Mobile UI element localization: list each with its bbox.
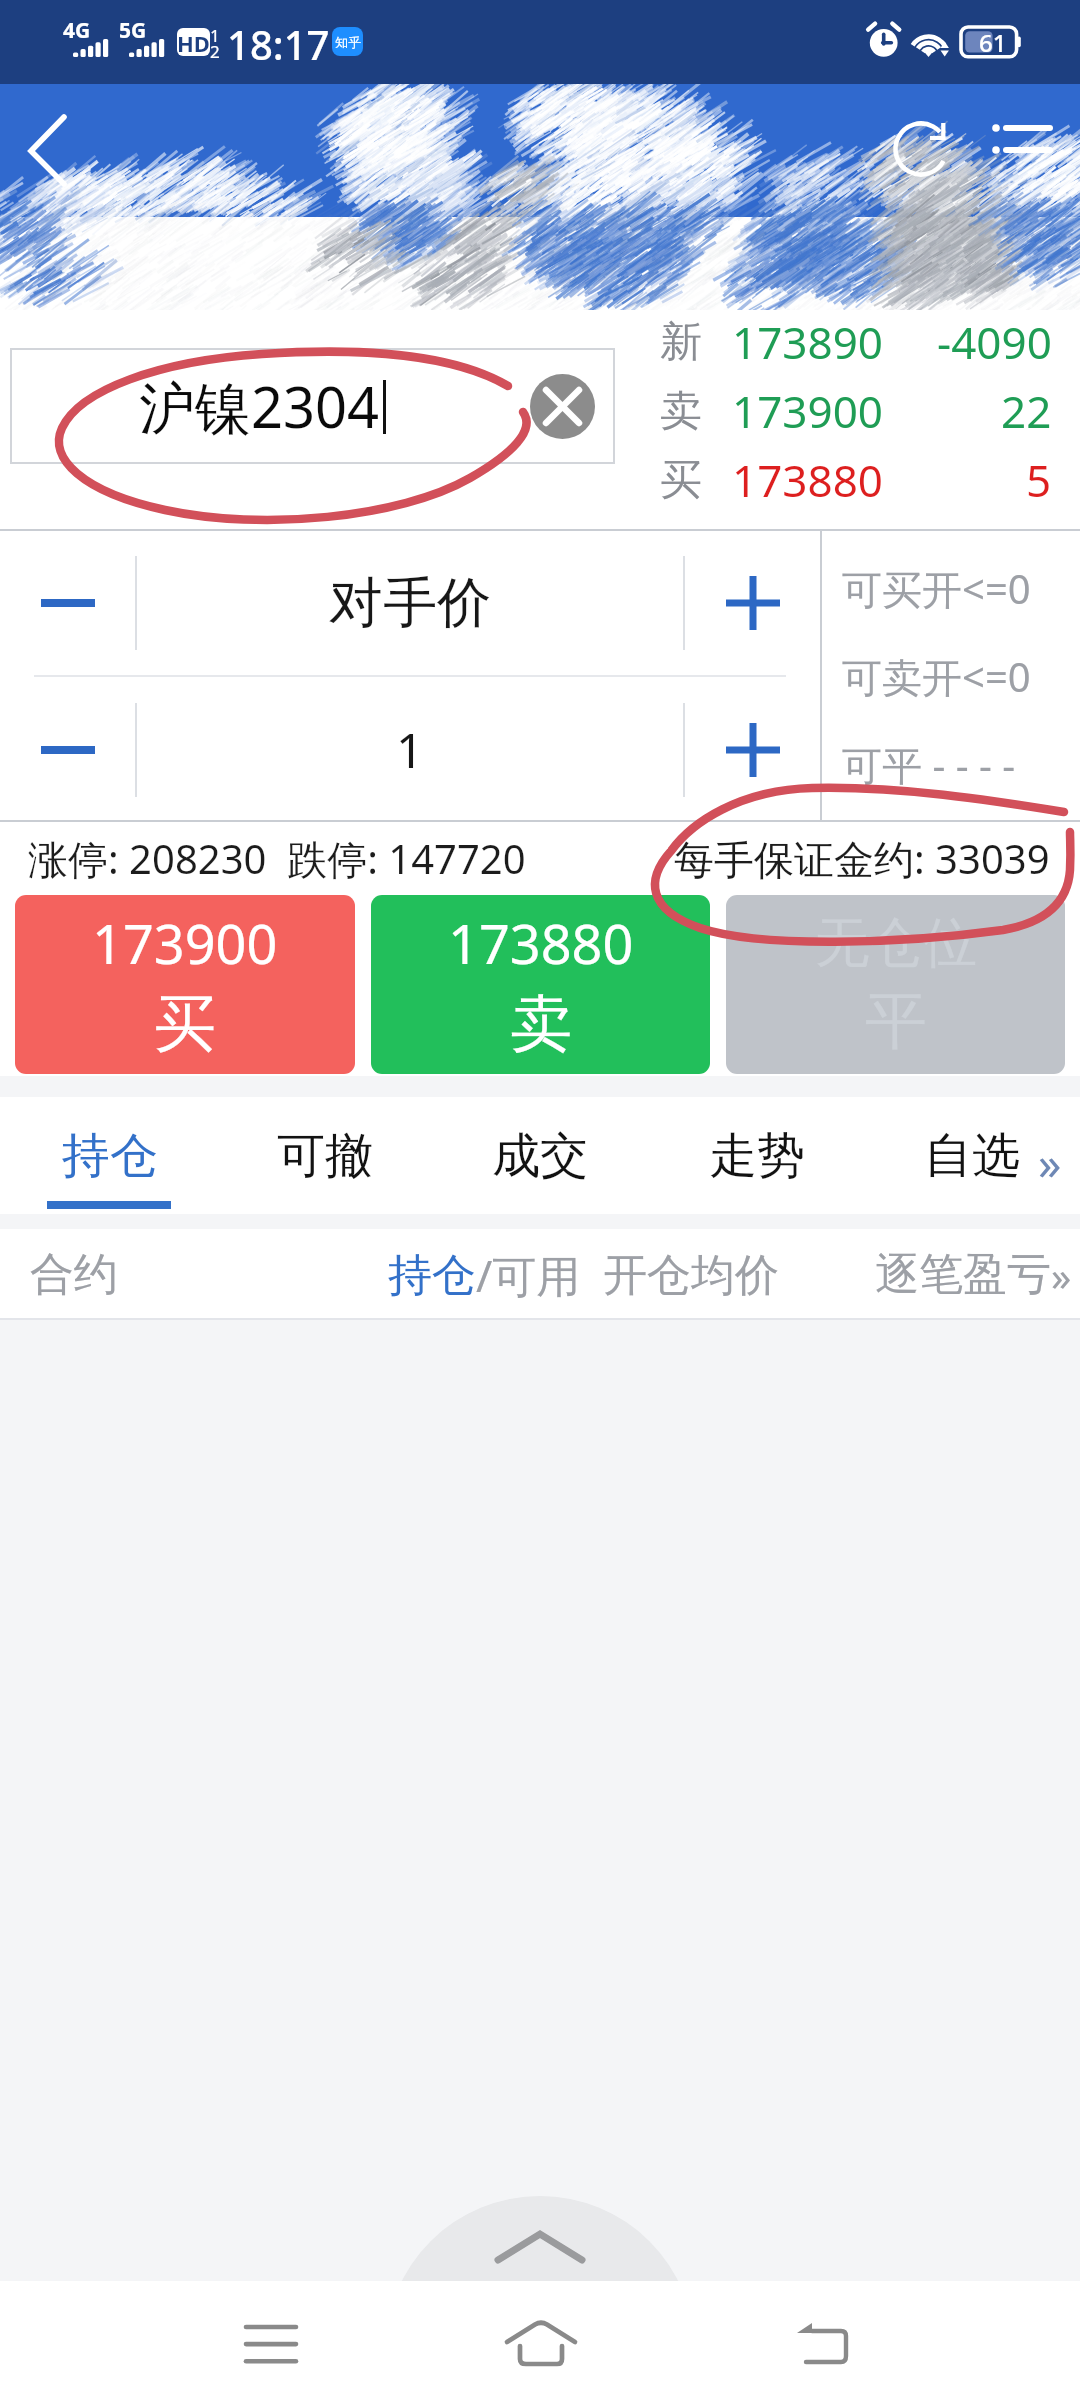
button[interactable]: 173900 (15, 895, 355, 1074)
staticText: 22 (1001, 381, 1052, 441)
button[interactable]: 走势 (657, 1097, 857, 1214)
staticText: 知乎 (335, 34, 361, 50)
staticText: 买 (154, 985, 216, 1063)
staticText: HD (177, 28, 210, 56)
button[interactable]: Decrease (0, 677, 135, 822)
staticText: 卖 (510, 985, 572, 1063)
button[interactable]: Recent apps (211, 2299, 331, 2389)
staticText: 173880 (732, 450, 884, 510)
staticText: 卖 (660, 385, 702, 438)
staticText: 173890 (732, 312, 884, 372)
staticText: 61 (979, 26, 1007, 59)
staticText: 2 (210, 40, 220, 63)
staticText: 5G (119, 16, 147, 45)
staticText: /可用 (476, 1245, 581, 1305)
button[interactable]: Decrease (0, 531, 135, 675)
staticText: 平 (865, 982, 927, 1060)
staticText: 开仓均价 (603, 1248, 779, 1303)
button[interactable]: Increase (685, 677, 820, 822)
staticText: » (1038, 1131, 1062, 1194)
staticText: 每手保证金约: 33039 (674, 831, 1050, 886)
button[interactable]: 成交 (440, 1097, 640, 1214)
staticText: 可买开<=0 (842, 561, 1031, 616)
staticText: 涨停: 208230 跌停: 147720 (28, 831, 526, 886)
staticText: 可撤 (277, 1126, 373, 1186)
staticText: 自选 (924, 1126, 1020, 1186)
button[interactable]: 173880 (371, 895, 710, 1074)
staticText: 4G (63, 16, 91, 45)
staticText: 走势 (709, 1126, 805, 1186)
button[interactable]: Clear (530, 374, 595, 439)
staticText: 合约 (30, 1247, 118, 1302)
staticText: 成交 (492, 1126, 588, 1186)
button[interactable]: 持仓 (10, 1097, 210, 1214)
staticText: 持仓 (388, 1248, 476, 1303)
staticText: 1 (396, 717, 424, 782)
staticText: -4090 (937, 312, 1052, 372)
staticText: 18:17 (227, 17, 330, 71)
staticText: » (1051, 1248, 1072, 1302)
staticText: 持仓 (62, 1126, 158, 1186)
staticText: 173900 (92, 906, 278, 980)
staticText: 无仓位 (815, 909, 977, 977)
button[interactable]: Back (771, 2311, 881, 2381)
staticText: 1 (210, 24, 220, 47)
staticText: 买 (660, 454, 702, 507)
button[interactable]: Back (0, 104, 96, 200)
staticText: 逐笔盈亏 (875, 1247, 1051, 1302)
button[interactable]: Refresh (873, 101, 969, 197)
staticText: 新 (660, 316, 702, 369)
staticText: 5 (1026, 450, 1052, 510)
button[interactable]: 沪镍2304 (11, 349, 614, 463)
staticText: 对手价 (329, 569, 491, 637)
staticText: 可平 - - - - (842, 737, 1016, 792)
staticText: 173880 (448, 906, 634, 980)
button[interactable]: Increase (685, 531, 820, 675)
button[interactable]: 无仓位 (726, 895, 1065, 1074)
staticText: 173900 (732, 381, 884, 441)
button[interactable]: 可撤 (225, 1097, 425, 1214)
staticText: 沪镍2304 (139, 368, 380, 444)
button[interactable]: More options (968, 104, 1060, 192)
button[interactable]: 自选 (872, 1097, 1072, 1214)
staticText: 可卖开<=0 (842, 649, 1031, 704)
button[interactable]: Home (481, 2311, 601, 2381)
